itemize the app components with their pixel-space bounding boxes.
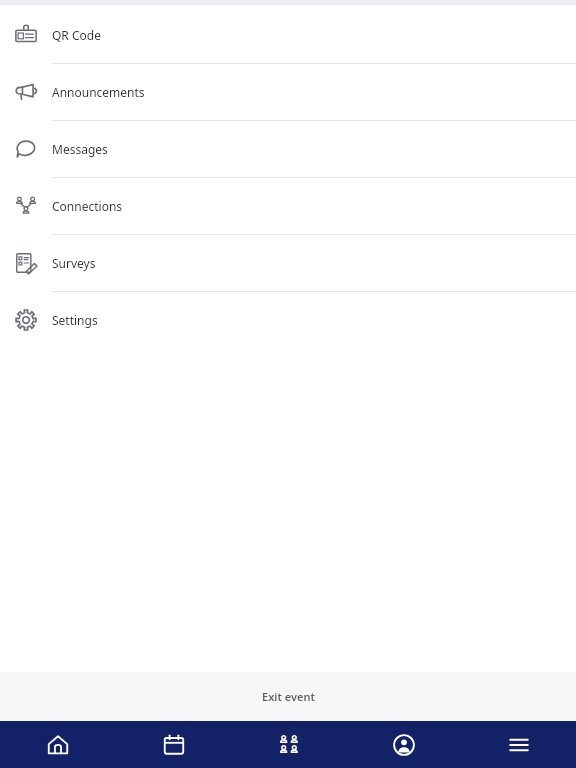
staticText: Connections (52, 198, 123, 214)
button[interactable]: Home (0, 721, 116, 768)
button[interactable]: Profile (346, 721, 461, 768)
button[interactable]: Settings (0, 293, 576, 347)
button[interactable]: Exit event (0, 672, 576, 721)
button[interactable]: Messages (0, 122, 576, 176)
staticText: Announcements (52, 84, 145, 100)
button[interactable]: Surveys (0, 236, 576, 290)
staticText: Exit event (262, 689, 315, 704)
button[interactable]: Attendees (231, 721, 346, 768)
button[interactable]: Connections (0, 179, 576, 233)
staticText: Messages (52, 141, 108, 157)
button[interactable]: Calendar (116, 721, 231, 768)
button[interactable]: Menu (461, 721, 576, 768)
button[interactable]: Announcements (0, 65, 576, 119)
button[interactable]: QR Code (0, 8, 576, 62)
staticText: Settings (52, 312, 98, 328)
staticText: Surveys (52, 255, 96, 271)
staticText: QR Code (52, 27, 101, 43)
